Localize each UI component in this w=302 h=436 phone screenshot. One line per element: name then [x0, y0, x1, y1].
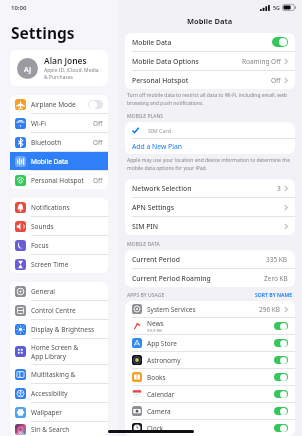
staticText: Add a New Plan	[132, 142, 182, 151]
button[interactable]: APN Settings	[125, 198, 295, 216]
button[interactable]: Books	[125, 369, 295, 385]
button[interactable]: AJ	[10, 50, 108, 86]
staticText: Turn off mobile data to restrict all dat…	[127, 92, 288, 99]
button[interactable]: SORT BY NAME	[255, 292, 293, 299]
button[interactable]: On	[274, 424, 288, 432]
other: SIM Card selected	[132, 127, 139, 134]
button[interactable]: SIM PIN	[125, 217, 295, 235]
button[interactable]: On	[274, 322, 288, 330]
button[interactable]: General	[10, 282, 108, 300]
staticText: Wallpaper	[31, 408, 62, 417]
button[interactable]: System Services	[125, 301, 295, 317]
staticText: App Library	[31, 352, 67, 361]
staticText: 296 KB	[259, 305, 281, 314]
staticText: Camera	[147, 407, 171, 416]
button[interactable]: Current Period Roaming	[125, 269, 295, 287]
staticText: 10:00	[11, 4, 27, 12]
staticText: Display & Brightness	[31, 325, 95, 334]
staticText: Off	[93, 138, 103, 147]
staticText: App Store	[147, 339, 177, 348]
button[interactable]: On	[274, 390, 288, 398]
button[interactable]: Calendar	[125, 386, 295, 402]
button[interactable]: Accessibility	[10, 384, 108, 402]
staticText: Astronomy	[147, 356, 181, 365]
button[interactable]: Multitasking & Gestures	[10, 365, 108, 383]
button[interactable]: Control Centre	[10, 301, 108, 319]
button[interactable]: Airplane Mode	[10, 95, 108, 113]
staticText: APPS BY USAGE	[127, 292, 165, 299]
staticText: 335 KB	[266, 255, 288, 264]
button[interactable]: Wi-Fi	[10, 114, 108, 132]
staticText: MOBILE DATA	[127, 241, 160, 248]
staticText: Multitasking & Gestures	[31, 370, 103, 379]
staticText: 3	[277, 184, 281, 193]
staticText: Off	[271, 76, 281, 85]
button[interactable]: Bluetooth	[10, 133, 108, 151]
button[interactable]: Siri & Search	[10, 422, 108, 436]
staticText: SIM PIN	[132, 222, 158, 231]
button[interactable]: Off	[88, 100, 103, 109]
button[interactable]: Mobile Data Options	[125, 52, 295, 70]
staticText: Bluetooth	[31, 138, 62, 147]
staticText: Mobile Data Options	[132, 57, 199, 66]
button[interactable]: On	[274, 356, 288, 364]
button[interactable]: Network Selection	[125, 179, 295, 197]
button[interactable]: Screen Time	[10, 255, 108, 273]
staticText: Home Screen &	[31, 343, 79, 352]
staticText: Off	[93, 119, 103, 128]
button[interactable]: Wallpaper	[10, 403, 108, 421]
staticText: Mobile Data	[31, 157, 68, 166]
button[interactable]: On	[274, 407, 288, 415]
staticText: Control Centre	[31, 306, 76, 315]
button[interactable]: News	[125, 318, 295, 334]
staticText: Calendar	[147, 390, 175, 399]
button[interactable]: SIM Card selected	[125, 122, 295, 138]
staticText: System Services	[147, 305, 196, 314]
staticText: AJ	[24, 64, 32, 74]
staticText: MOBILE PLANS	[127, 113, 164, 120]
staticText: Personal Hotspot	[31, 176, 84, 185]
staticText: Books	[147, 373, 166, 382]
button[interactable]: Camera	[125, 403, 295, 419]
button[interactable]: Display & Brightness	[10, 320, 108, 338]
button[interactable]: On	[274, 373, 288, 381]
button[interactable]: Personal Hotspot	[125, 71, 295, 89]
staticText: Screen Time	[31, 260, 69, 269]
staticText: Mobile Data	[187, 16, 233, 26]
button[interactable]: Add a New Plan	[125, 139, 295, 154]
staticText: Zero KB	[264, 274, 288, 283]
button[interactable]: Mobile Data	[125, 33, 295, 51]
button[interactable]: Mobile Data	[10, 152, 108, 170]
button[interactable]: Home Screen &	[10, 339, 108, 364]
staticText: Focus	[31, 241, 49, 250]
staticText: Apple may use your location and device i…	[127, 157, 290, 164]
button[interactable]: Personal Hotspot	[10, 171, 108, 189]
staticText: Alan Jones	[44, 55, 87, 66]
staticText: & Purchases	[44, 74, 73, 81]
staticText: Airplane Mode	[31, 100, 76, 109]
staticText: Siri & Search	[31, 425, 70, 434]
staticText: Notifications	[31, 203, 70, 212]
staticText: Clock	[147, 424, 164, 433]
staticText: mobile data options for your iPad.	[127, 165, 207, 172]
staticText: Apple ID, iCloud, Media	[44, 67, 99, 74]
button[interactable]: Clock	[125, 420, 295, 436]
button[interactable]: Current Period	[125, 250, 295, 268]
button[interactable]: Astronomy	[125, 352, 295, 368]
staticText: Off	[93, 176, 103, 185]
button[interactable]: On	[274, 339, 288, 347]
staticText: browsing and push notifications.	[127, 100, 204, 107]
button[interactable]: On	[272, 37, 288, 47]
button[interactable]: App Store	[125, 335, 295, 351]
staticText: Personal Hotspot	[132, 76, 189, 85]
staticText: General	[31, 287, 55, 296]
staticText: Accessibility	[31, 389, 68, 398]
staticText: 5G	[273, 4, 280, 11]
button[interactable]: Notifications	[10, 198, 108, 216]
staticText: APN Settings	[132, 203, 175, 212]
button[interactable]: Sounds	[10, 217, 108, 235]
button[interactable]: Focus	[10, 236, 108, 254]
staticText: 39.9 KB	[147, 328, 162, 334]
staticText: Roaming Off	[242, 57, 281, 66]
staticText: Current Period	[132, 255, 180, 264]
